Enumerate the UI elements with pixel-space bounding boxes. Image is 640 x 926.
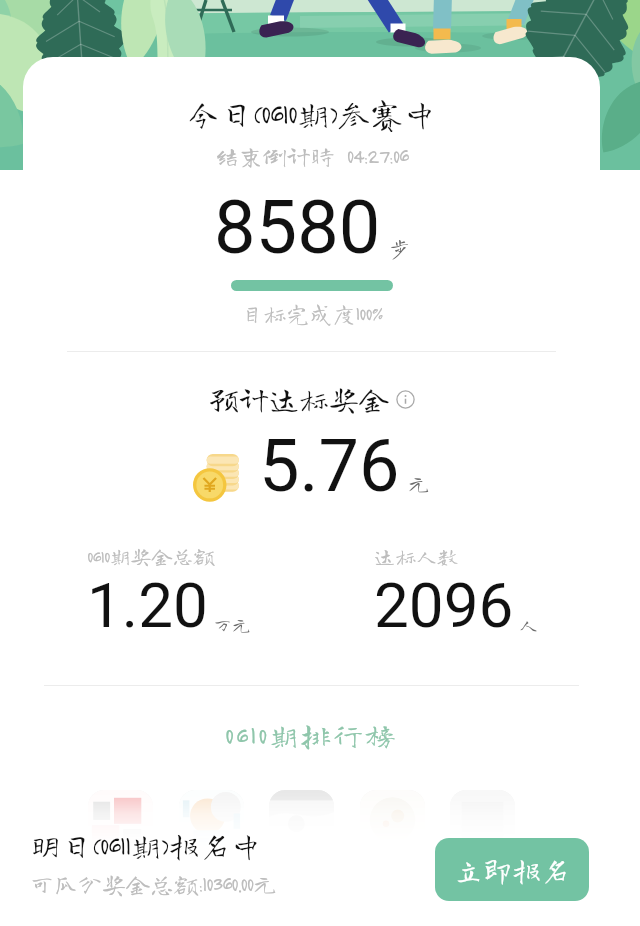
staticText: 预计达标奖金 xyxy=(209,384,389,414)
button[interactable]: Rank avatar 4 xyxy=(360,790,425,855)
staticText: 2096 xyxy=(374,569,514,642)
staticText: 8580 xyxy=(214,184,381,271)
button[interactable]: Rank avatar 2 xyxy=(179,790,244,855)
staticText: 达标人数 xyxy=(374,546,458,567)
staticText: 步 xyxy=(389,238,410,259)
staticText: 1.20 xyxy=(87,569,208,642)
button[interactable]: 立即报名 xyxy=(435,838,589,901)
staticText: 人 xyxy=(519,615,539,634)
staticText: 0610期奖金总额 xyxy=(87,546,215,567)
staticText: 立即报名 xyxy=(454,855,571,884)
staticText: 万元 xyxy=(213,615,252,634)
staticText: 今日(0610期)参赛中 xyxy=(23,97,600,130)
button[interactable]: Rank avatar 1 xyxy=(88,790,153,855)
other: Info xyxy=(396,390,415,409)
staticText: 目标完成度100% xyxy=(23,302,600,325)
button[interactable]: 预计达标奖金 xyxy=(23,384,600,414)
staticText: 元 xyxy=(408,473,431,495)
button[interactable]: Rank avatar 5 xyxy=(450,790,515,855)
button[interactable]: 0610期排行榜 xyxy=(23,720,600,749)
button[interactable]: Rank avatar 3 xyxy=(269,790,334,855)
staticText: 结束倒计时 04:27:06 xyxy=(23,144,600,168)
staticText: 可瓜分奖金总额:10360.00元 xyxy=(30,872,278,896)
staticText: 5.76 xyxy=(259,424,400,508)
staticText: 明日(0611期)报名中 xyxy=(30,830,262,861)
